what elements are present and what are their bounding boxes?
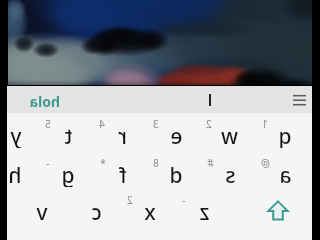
staticText: q — [278, 122, 292, 148]
button[interactable]: d — [159, 161, 193, 187]
button[interactable]: c — [79, 198, 113, 224]
button[interactable]: h — [0, 161, 32, 187]
button[interactable]: y — [0, 122, 33, 148]
staticText: 8 — [153, 156, 159, 168]
button[interactable]: q — [268, 122, 302, 148]
staticText: s — [225, 161, 236, 187]
staticText: d — [169, 161, 183, 187]
staticText: 3 — [153, 117, 159, 129]
staticText: @ — [261, 156, 270, 168]
staticText: 2 — [127, 193, 133, 205]
staticText: * — [100, 156, 106, 168]
staticText: c — [91, 198, 102, 224]
button[interactable]: hola — [14, 86, 204, 113]
button[interactable]: f — [106, 161, 140, 187]
staticText: z — [199, 198, 210, 224]
button[interactable]: w — [212, 122, 246, 148]
staticText: 1 — [262, 117, 268, 129]
button[interactable]: t — [51, 122, 85, 148]
button[interactable]: e — [159, 122, 193, 148]
staticText: v — [36, 198, 48, 224]
button[interactable]: v — [25, 198, 59, 224]
staticText: h — [8, 161, 22, 187]
staticText: t — [64, 122, 73, 148]
staticText: f — [119, 161, 127, 187]
button[interactable]: Menu — [289, 89, 310, 110]
staticText: - — [182, 193, 186, 205]
button[interactable]: Send — [261, 194, 294, 227]
staticText: - — [46, 156, 50, 168]
staticText: 2 — [206, 117, 212, 129]
staticText: g — [61, 161, 75, 187]
staticText: 4 — [99, 117, 105, 129]
staticText: 5 — [45, 117, 51, 129]
staticText: e — [170, 122, 183, 148]
button[interactable]: r — [105, 122, 139, 148]
button[interactable]: a — [268, 161, 302, 187]
staticText: w — [221, 122, 238, 148]
staticText: y — [10, 122, 22, 148]
staticText: x — [144, 198, 156, 224]
staticText: a — [279, 161, 292, 187]
button[interactable]: g — [51, 161, 85, 187]
staticText: hola — [29, 92, 60, 111]
button[interactable]: s — [213, 161, 247, 187]
button[interactable]: x — [133, 198, 167, 224]
button[interactable]: z — [187, 198, 221, 224]
staticText: # — [207, 156, 214, 168]
staticText: r — [118, 122, 127, 148]
